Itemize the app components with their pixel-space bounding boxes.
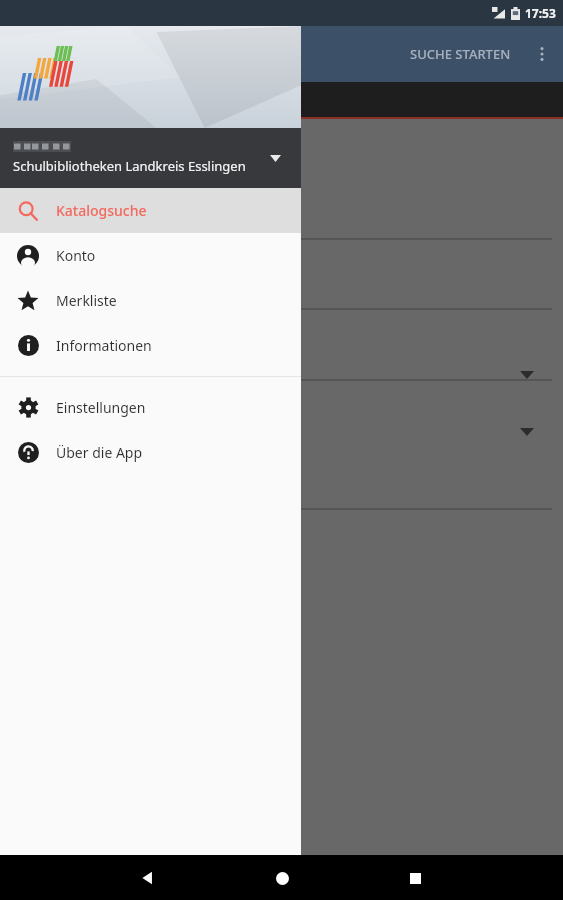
staticText: Stadtbücherei Landkreis Esslin…	[12, 35, 274, 58]
staticText: Konto	[56, 246, 96, 265]
staticText: Informationen	[56, 336, 152, 355]
button[interactable]: SUCHE STARTEN	[400, 31, 521, 77]
staticText: Merkliste	[56, 291, 117, 310]
button[interactable]: Einstellungen	[0, 385, 301, 430]
staticText: 17:53	[525, 5, 556, 21]
button[interactable]: Über die App	[0, 430, 301, 475]
button[interactable]: Schulbibliotheken Landkreis Esslingen	[0, 128, 301, 188]
button[interactable]: Home	[262, 858, 302, 898]
staticText: Katalogsuche	[56, 201, 147, 220]
button[interactable]: Recent apps	[395, 858, 435, 898]
staticText: Schulbibliotheken Landkreis Esslingen	[13, 157, 246, 175]
button[interactable]: Merkliste	[0, 278, 301, 323]
staticText: Einstellungen	[56, 398, 146, 417]
button[interactable]: Back	[128, 858, 168, 898]
button[interactable]: More options	[521, 33, 563, 75]
staticText: Schulbibliotheken Landkreis Esslingen	[12, 58, 227, 74]
button[interactable]: Katalogsuche	[0, 188, 301, 233]
button[interactable]: Konto	[0, 233, 301, 278]
staticText: SUCHE STARTEN	[410, 45, 511, 63]
button[interactable]: Informationen	[0, 323, 301, 368]
staticText: Über die App	[56, 443, 143, 462]
